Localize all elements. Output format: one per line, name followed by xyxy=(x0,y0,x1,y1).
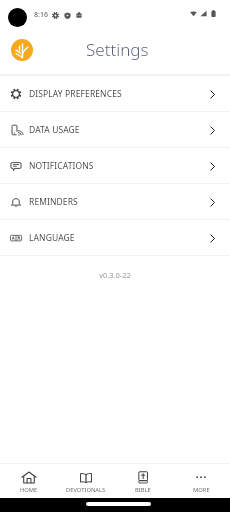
button[interactable]: HOME xyxy=(0,464,57,498)
button[interactable]: DISPLAY PREFERENCES xyxy=(0,76,230,112)
button[interactable]: REMINDERS xyxy=(0,184,230,220)
staticText: DISPLAY PREFERENCES xyxy=(29,88,122,100)
staticText: DATA USAGE xyxy=(29,124,80,136)
button[interactable]: DEVOTIONALS xyxy=(57,464,114,498)
staticText: LANGUAGE xyxy=(29,232,75,244)
button[interactable]: NOTIFICATIONS xyxy=(0,148,230,184)
staticText: NOTIFICATIONS xyxy=(29,160,94,172)
staticText: BIBLE xyxy=(135,486,151,494)
staticText: REMINDERS xyxy=(29,196,78,208)
staticText: 8:16 xyxy=(34,10,48,20)
staticText: HOME xyxy=(20,486,38,494)
button[interactable]: BIBLE xyxy=(114,464,172,498)
button[interactable]: DATA USAGE xyxy=(0,112,230,148)
staticText: v0.3.0-22 xyxy=(0,270,230,280)
button[interactable]: LANGUAGE xyxy=(0,220,230,256)
staticText: MORE xyxy=(193,486,210,494)
staticText: DEVOTIONALS xyxy=(66,486,106,494)
staticText: Settings xyxy=(86,38,149,61)
button[interactable]: MORE xyxy=(172,464,230,498)
